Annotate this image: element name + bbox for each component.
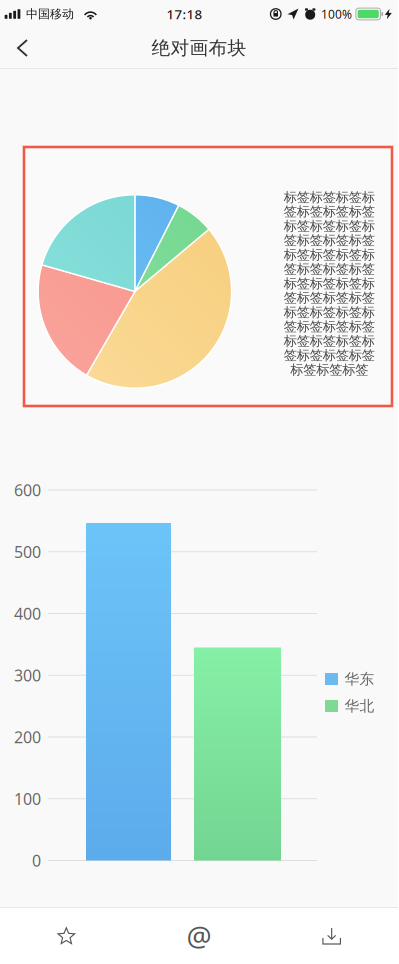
staticText: 17:18	[166, 5, 202, 23]
staticText: 华北	[344, 697, 374, 715]
staticText: 600	[14, 479, 41, 501]
staticText: @	[186, 917, 211, 955]
staticText: 中国移动	[26, 7, 74, 21]
button[interactable]: Back	[0, 28, 45, 68]
staticText: 400	[14, 603, 41, 624]
button[interactable]: Favorites	[0, 908, 133, 964]
staticText: 100%	[321, 6, 352, 22]
staticText: 200	[14, 726, 41, 748]
button[interactable]: Mail	[133, 908, 265, 964]
staticText: 100	[14, 788, 41, 809]
staticText: 300	[14, 665, 41, 686]
staticText: 华东	[344, 670, 374, 688]
staticText: 标签标签标签标签标签标签标签标签标签标签标签标签标签标签标签标签标签标签标签标签…	[283, 189, 374, 378]
staticText: 绝对画布块	[151, 36, 246, 59]
staticText: 0	[32, 850, 41, 871]
staticText: 500	[14, 541, 41, 562]
button[interactable]: Download	[265, 908, 398, 964]
